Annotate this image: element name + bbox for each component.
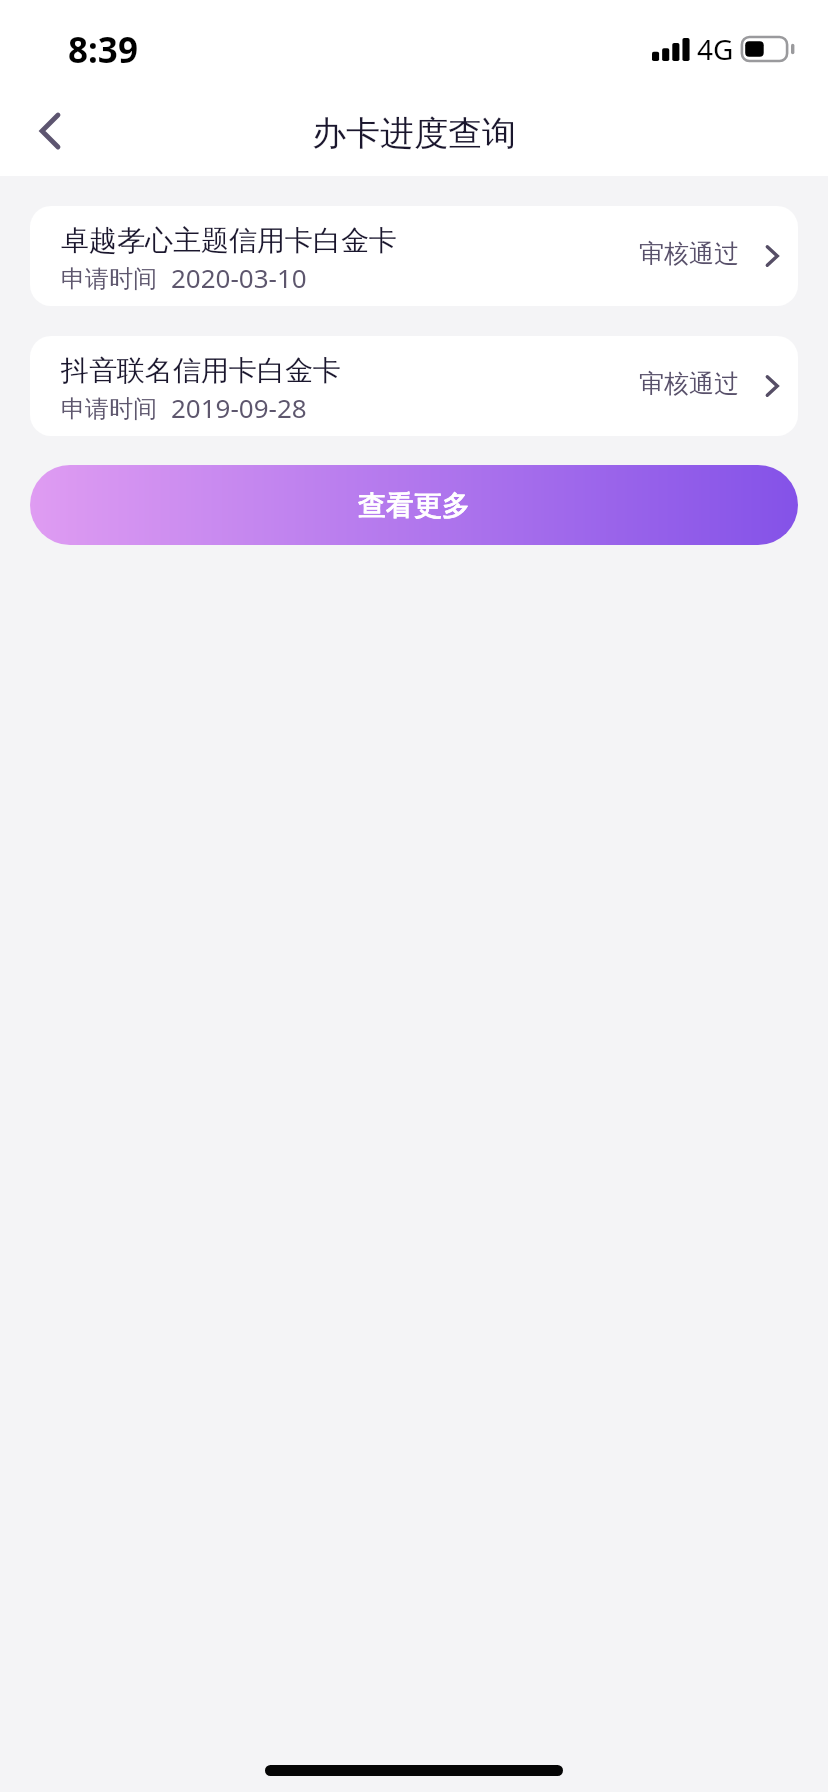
- staticText: 4G: [697, 30, 734, 68]
- staticText: 申请时间: [61, 264, 157, 294]
- staticText: 审核通过: [639, 238, 739, 269]
- staticText: 2019-09-28: [171, 390, 307, 425]
- button[interactable]: Back: [14, 98, 86, 164]
- button[interactable]: 卓越孝心主题信用卡白金卡: [30, 206, 798, 306]
- button[interactable]: 查看更多: [30, 465, 798, 545]
- staticText: 卓越孝心主题信用卡白金卡: [61, 223, 397, 258]
- staticText: 查看更多: [358, 488, 470, 523]
- staticText: 2020-03-10: [171, 260, 307, 295]
- staticText: 查看更多: [358, 488, 470, 523]
- staticText: 办卡进度查询: [312, 112, 516, 155]
- staticText: 申请时间: [61, 394, 157, 424]
- staticText: 8:39: [68, 26, 138, 74]
- staticText: 审核通过: [639, 368, 739, 399]
- staticText: 抖音联名信用卡白金卡: [61, 353, 341, 388]
- button[interactable]: 抖音联名信用卡白金卡: [30, 336, 798, 436]
